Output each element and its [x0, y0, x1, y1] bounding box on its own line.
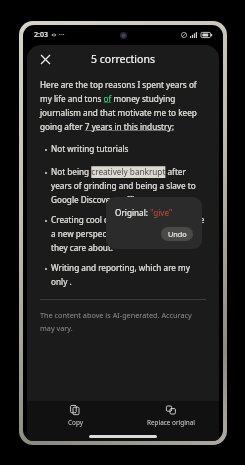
staticText: Not writing tutorials [51, 143, 129, 154]
button[interactable]: Replace original [123, 405, 219, 427]
staticText: Here are the top reasons I spent years o… [40, 79, 206, 132]
staticText: Creating cool content and giving people … [51, 214, 206, 253]
staticText: 5 corrections [91, 52, 155, 66]
staticText: Original: "give" [115, 207, 173, 218]
staticText: Replace original [147, 418, 195, 427]
staticText: Copy [68, 418, 83, 427]
staticText: Undo [168, 229, 187, 239]
button[interactable]: Close [35, 49, 55, 69]
staticText: 2:03 [34, 30, 48, 40]
staticText: Not being creatively bankrupt after year… [51, 166, 206, 205]
button[interactable]: Copy [27, 405, 123, 427]
staticText: The content above is AI-generated. Accur… [40, 310, 206, 333]
staticText: Writing and reporting, which are my only… [51, 262, 206, 287]
button[interactable]: Undo [161, 227, 193, 241]
staticText: ··· [59, 30, 65, 40]
